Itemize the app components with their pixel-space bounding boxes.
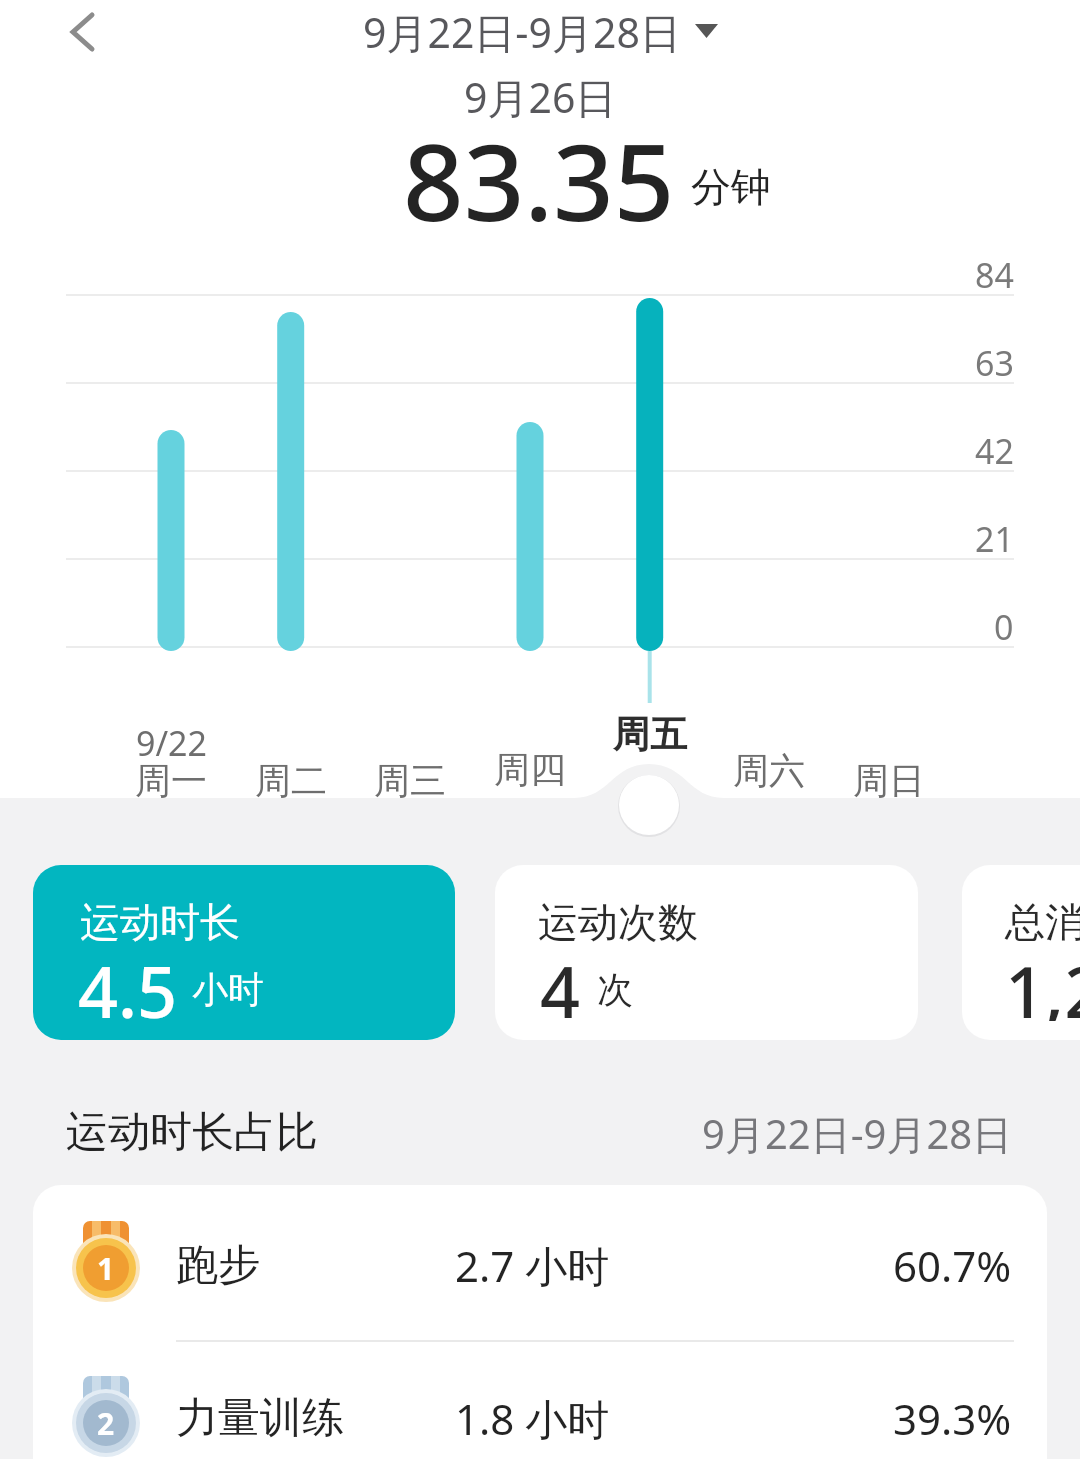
staticText: 1,292 [1005,943,1080,1021]
button[interactable]: 9月22日-9月28日 [363,4,718,56]
staticText: 63 [975,340,1014,386]
staticText: 42 [975,428,1014,474]
staticText: 2 [97,1403,115,1444]
staticText: 周六 [733,748,805,793]
staticText: 周四 [494,747,566,792]
staticText: 83.35 [403,108,675,228]
button[interactable]: 总消耗 [962,865,1080,1040]
button[interactable]: 运动时长 [33,865,455,1040]
staticText: 周三 [374,758,446,803]
staticText: 运动时长占比 [66,1106,318,1159]
staticText: 跑步 [176,1239,260,1292]
staticText: 0 [994,604,1014,650]
staticText: 力量训练 [176,1392,344,1445]
staticText: 9/22 [136,720,207,766]
button[interactable]: 运动次数 [495,865,918,1040]
button[interactable] [33,1190,1047,1340]
button[interactable] [33,1345,1047,1459]
staticText: 1 [97,1248,115,1289]
staticText: 84 [975,252,1014,298]
staticText: 9月22日-9月28日 [363,4,681,56]
staticText: 2.7 小时 [455,1237,610,1294]
staticText: 周日 [853,758,925,803]
staticText: 4.5 [78,943,178,1021]
staticText: 60.7% [893,1237,1012,1294]
staticText: 周二 [255,758,327,803]
staticText: 21 [975,516,1014,562]
staticText: 运动次数 [538,897,698,947]
staticText: 运动时长 [80,897,240,947]
staticText: 分钟 [691,162,771,212]
staticText: 周一 [135,758,207,803]
button[interactable] [52,8,112,56]
staticText: 总消耗 [1005,897,1080,947]
staticText: 9月22日-9月28日 [702,1106,1013,1161]
staticText: 39.3% [893,1390,1012,1447]
staticText: 小时 [192,967,264,1012]
staticText: 周五 [613,711,687,758]
staticText: 次 [597,967,633,1012]
staticText: 4 [540,943,581,1021]
staticText: 9月26日 [464,69,617,125]
staticText: 1.8 小时 [455,1390,610,1447]
